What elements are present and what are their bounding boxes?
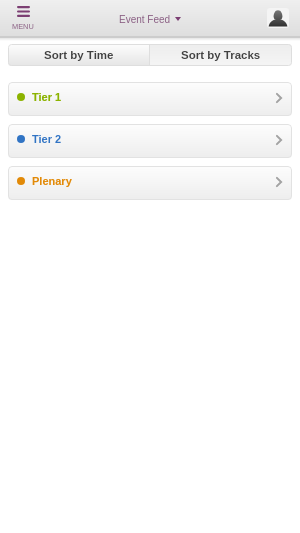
button[interactable]: MENU xyxy=(0,0,46,36)
staticText: Sort by Time xyxy=(44,49,114,62)
button[interactable]: Tier 1 xyxy=(8,82,292,116)
button[interactable]: Plenary xyxy=(8,166,292,200)
button[interactable]: Sort by Tracks xyxy=(150,44,292,66)
button[interactable]: Event Feed xyxy=(119,14,181,25)
button[interactable]: Sort by Time xyxy=(8,44,149,66)
button[interactable]: Profile xyxy=(267,8,289,28)
staticText: Sort by Tracks xyxy=(181,49,261,62)
staticText: Event Feed xyxy=(119,14,171,25)
button[interactable]: Tier 2 xyxy=(8,124,292,158)
staticText: MENU xyxy=(12,22,34,30)
staticText: Tier 2 xyxy=(32,133,62,145)
staticText: Plenary xyxy=(32,175,72,187)
staticText: Tier 1 xyxy=(32,91,62,103)
